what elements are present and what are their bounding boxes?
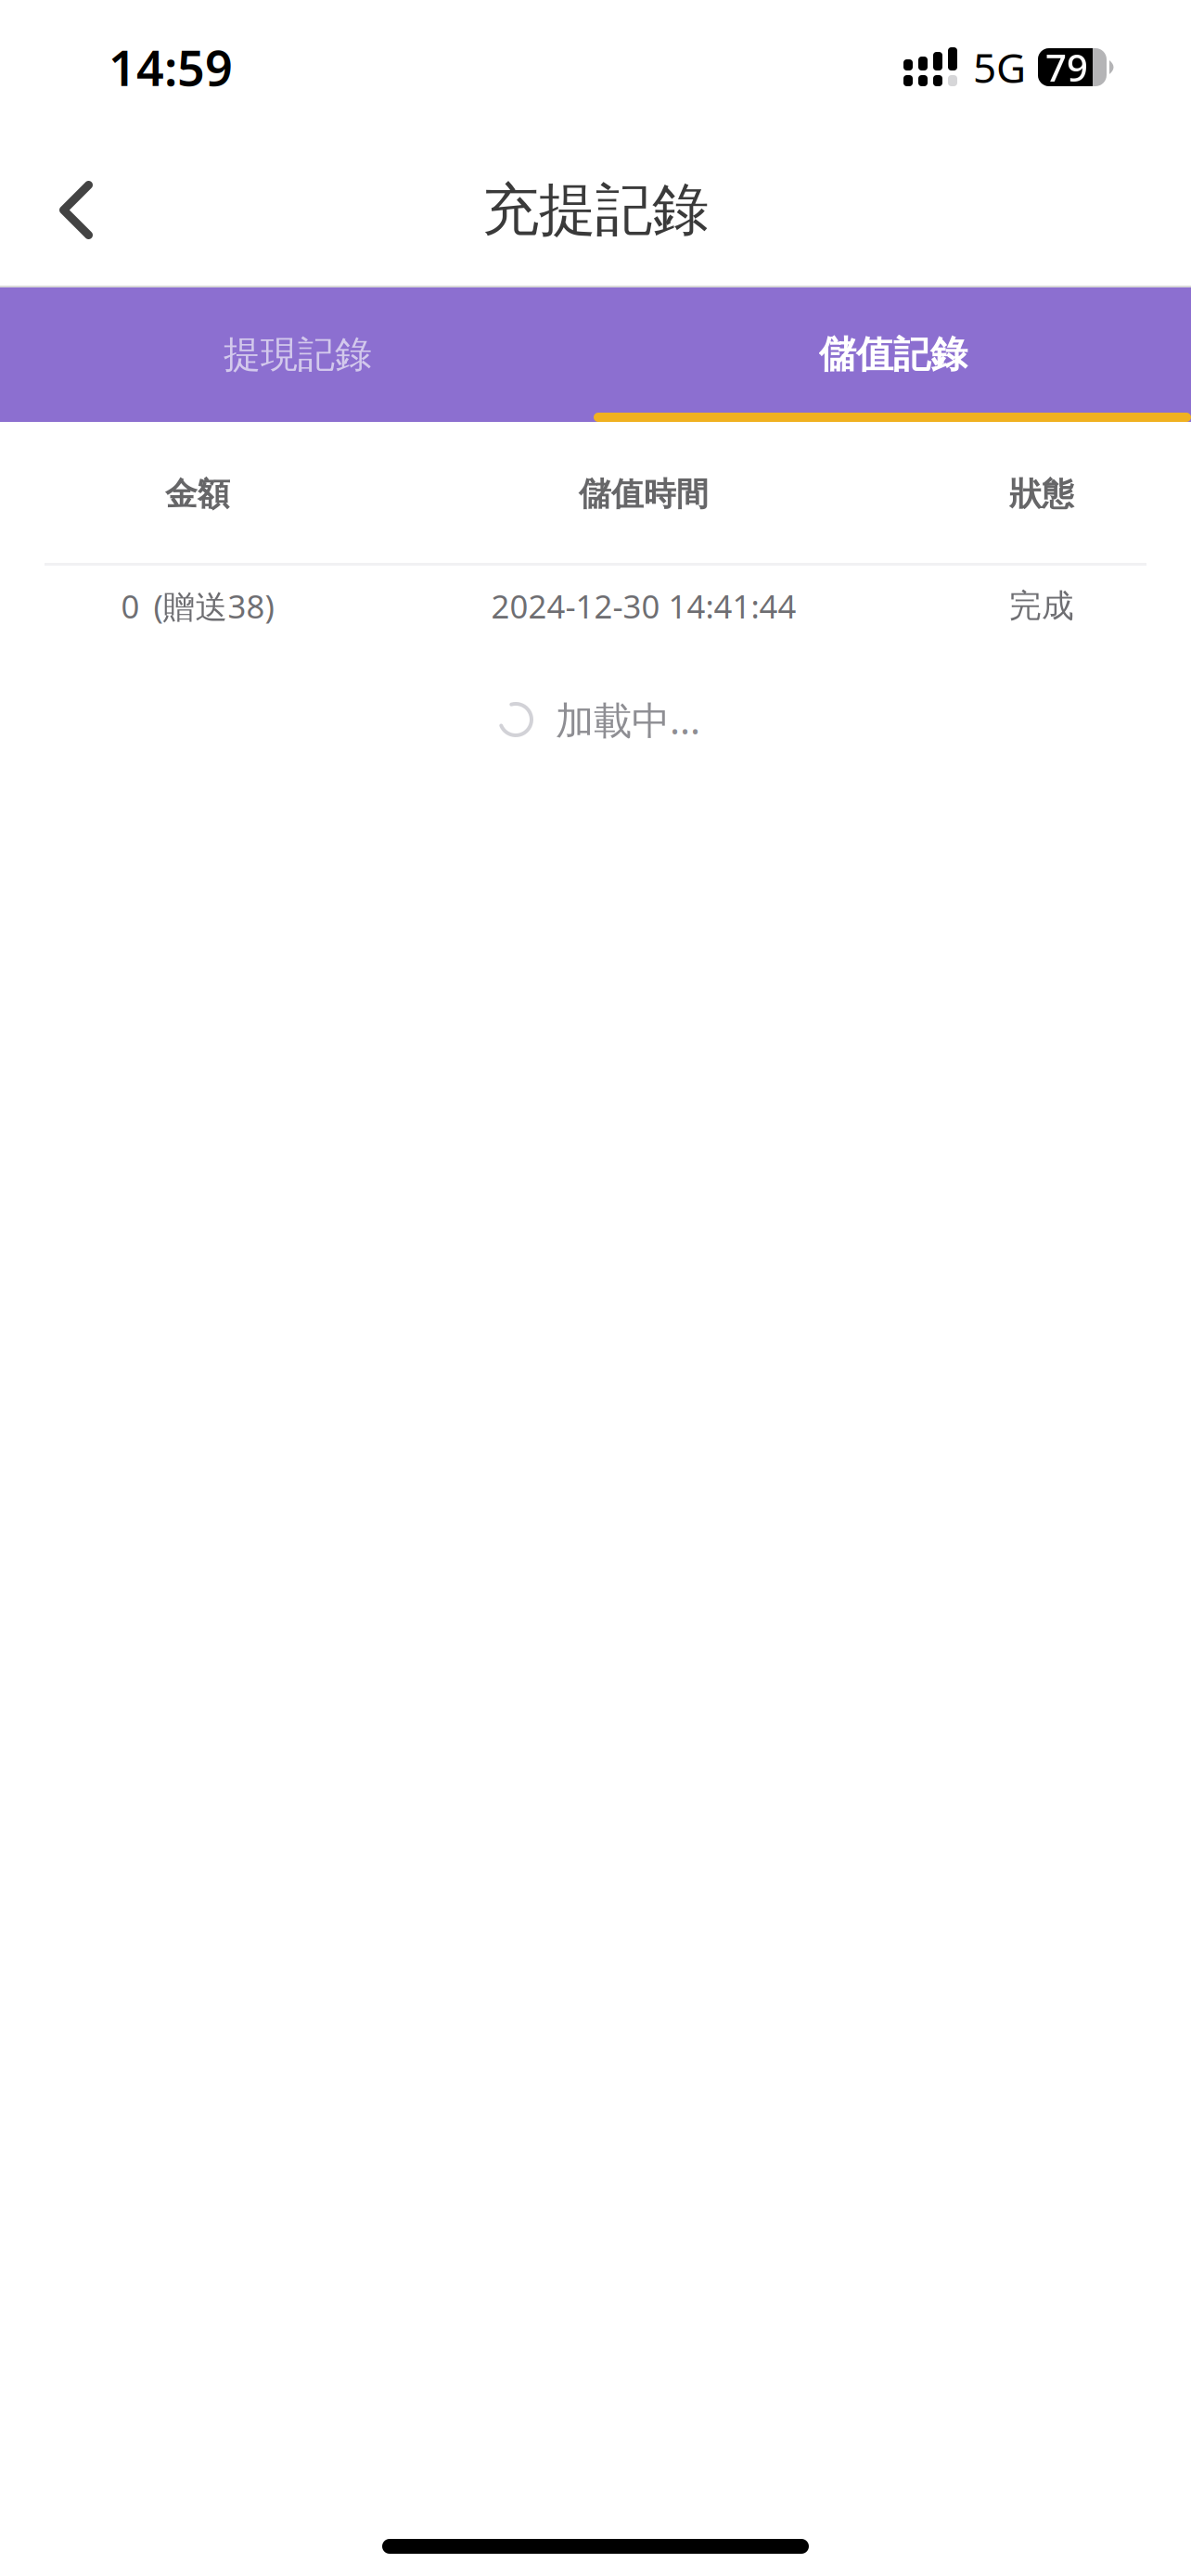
staticText: 2024-12-30 14:41:44 [491, 585, 796, 627]
staticText: 儲值記錄 [819, 332, 967, 377]
staticText: 提現記錄 [224, 332, 372, 377]
staticText: 儲值時間 [579, 474, 709, 514]
button[interactable]: Back [30, 164, 122, 256]
staticText: 14:59 [109, 35, 233, 99]
staticText: 狀態 [1009, 474, 1074, 514]
staticText: 加載中... [556, 694, 700, 745]
staticText: 完成 [1009, 586, 1074, 626]
staticText: 0 (贈送38) [121, 585, 274, 627]
button[interactable]: 0 (贈送38) [0, 566, 1191, 646]
button[interactable]: 儲值記錄 [595, 287, 1191, 422]
button[interactable]: 提現記錄 [0, 287, 595, 422]
staticText: 金額 [165, 474, 230, 514]
staticText: 充提記錄 [482, 175, 709, 245]
staticText: 79 [1045, 43, 1088, 92]
staticText: 5G [973, 40, 1026, 94]
